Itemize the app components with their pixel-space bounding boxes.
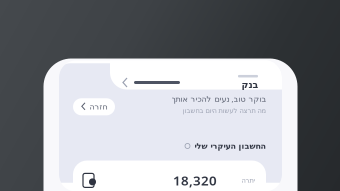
staticText: בנק	[241, 79, 258, 90]
staticText: חזרה	[89, 102, 107, 111]
button[interactable]: 18,320	[73, 160, 266, 191]
staticText: החשבון העיקרי שלי	[194, 141, 265, 151]
button[interactable]: Back	[118, 74, 132, 91]
staticText: יתרה	[241, 177, 254, 184]
staticText: 18,320	[173, 171, 217, 189]
staticText: בוקר טוב, נעים להכיר אותך	[171, 93, 266, 104]
staticText: מה תרצה לעשות היום בחשבון	[182, 107, 266, 114]
button[interactable]: חזרה	[73, 98, 115, 115]
